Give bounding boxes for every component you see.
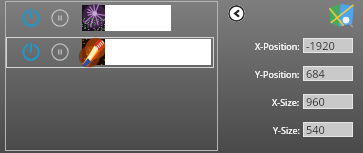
button[interactable] [5, 1, 218, 151]
button[interactable]: Power [21, 42, 41, 62]
staticText: Y-Position: [255, 68, 300, 80]
staticText: 540 [306, 122, 325, 137]
staticText: 684 [306, 66, 325, 81]
button[interactable]: 540 [303, 122, 353, 137]
button[interactable] [6, 37, 214, 68]
staticText: -1920 [306, 38, 335, 53]
staticText: Y-Size: [273, 124, 300, 136]
button[interactable]: Pause [50, 42, 70, 62]
staticText: 960 [306, 94, 325, 109]
button[interactable]: 960 [303, 94, 353, 109]
button[interactable]: -1920 [303, 38, 353, 53]
staticText: X-Position: [255, 40, 300, 52]
button[interactable]: Map search [329, 4, 354, 27]
button[interactable]: Preview [82, 5, 105, 31]
button[interactable]: Pause [50, 8, 70, 28]
button[interactable]: Preview [82, 39, 105, 65]
button[interactable]: Back [228, 5, 245, 22]
staticText: X-Size: [272, 96, 300, 108]
button[interactable]: 684 [303, 66, 353, 81]
button[interactable] [6, 5, 213, 31]
button[interactable]: Power [21, 8, 41, 28]
